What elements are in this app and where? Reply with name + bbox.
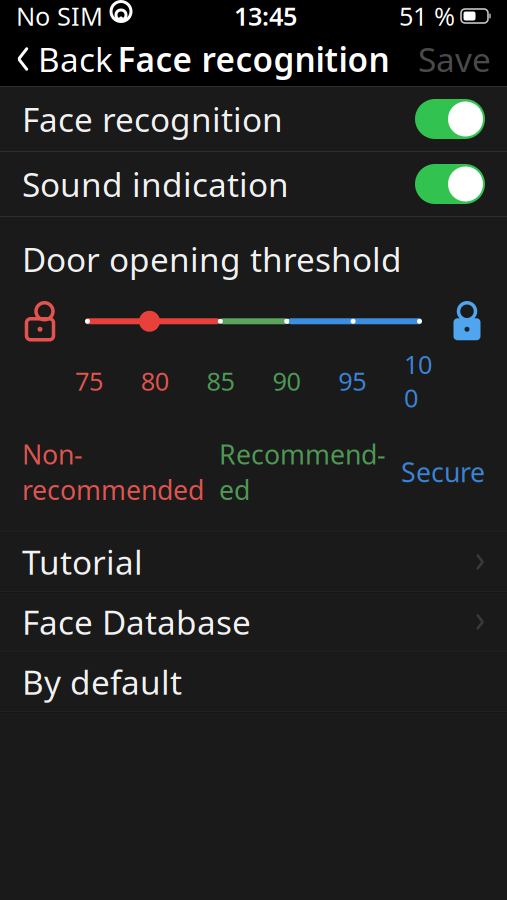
button[interactable]: By default <box>0 652 507 711</box>
staticText: Back <box>38 37 113 81</box>
staticText: Secure <box>401 454 485 490</box>
staticText: Tutorial <box>22 540 143 584</box>
staticText: 75 <box>75 364 103 398</box>
staticText: Recommended <box>219 436 386 507</box>
button[interactable]: Save <box>402 32 507 86</box>
staticText: 80 <box>141 364 169 398</box>
staticText: 90 <box>272 364 300 398</box>
button[interactable]: Face Database <box>0 592 507 651</box>
staticText: 100 <box>404 347 432 415</box>
staticText: 95 <box>338 364 366 398</box>
button[interactable]: Sound indication <box>0 152 507 216</box>
staticText: 85 <box>207 364 235 398</box>
button[interactable]: Back <box>0 32 129 86</box>
staticText: Save <box>418 37 491 81</box>
button[interactable]: Tutorial <box>0 532 507 591</box>
staticText: 13:45 <box>234 0 297 33</box>
button[interactable]: Face recognition <box>0 87 507 151</box>
staticText: No SIM <box>16 0 103 33</box>
staticText: Non-recommended <box>22 436 204 507</box>
staticText: By default <box>22 660 182 704</box>
staticText: Sound indication <box>22 162 289 206</box>
staticText: Face recognition <box>117 37 389 81</box>
staticText: 51 % <box>399 0 455 33</box>
staticText: Door opening threshold <box>22 237 402 281</box>
staticText: Face Database <box>22 600 251 644</box>
staticText: Face recognition <box>22 97 283 141</box>
